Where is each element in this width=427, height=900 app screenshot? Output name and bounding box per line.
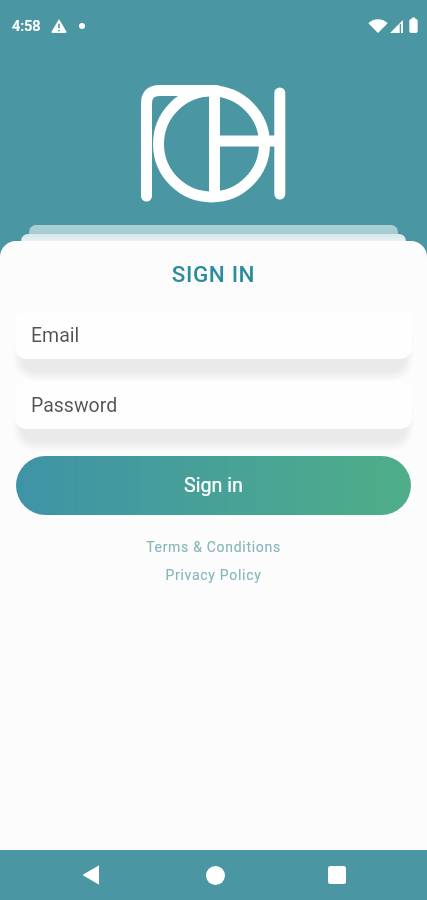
staticText: Sign in	[184, 474, 243, 497]
staticText: Password	[31, 394, 118, 417]
button[interactable]: Back	[62, 850, 118, 900]
button[interactable]: Recent apps	[309, 850, 365, 900]
button[interactable]: Privacy Policy	[0, 567, 427, 583]
button[interactable]: Password	[15, 381, 412, 429]
staticText: 4:58	[12, 18, 41, 35]
button[interactable]: Terms & Conditions	[0, 539, 427, 555]
button[interactable]: Home	[187, 850, 243, 900]
button[interactable]: Sign in	[16, 456, 411, 515]
staticText: Email	[31, 324, 80, 347]
button[interactable]: Email	[15, 311, 412, 359]
staticText: SIGN IN	[0, 261, 427, 287]
